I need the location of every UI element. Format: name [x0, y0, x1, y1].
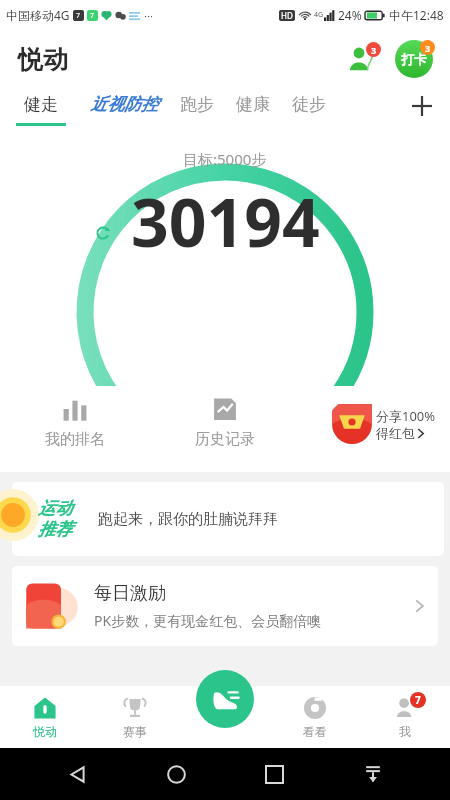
staticText: 7: [76, 11, 81, 21]
button[interactable]: 悦动: [0, 686, 90, 748]
staticText: 跑起来，跟你的肚腩说拜拜: [98, 510, 278, 529]
staticText: 我的排名: [45, 430, 105, 449]
button[interactable]: 看看: [270, 686, 360, 748]
staticText: 3: [425, 42, 431, 54]
button[interactable]: 健走: [16, 88, 66, 126]
staticText: 推荐: [38, 519, 72, 540]
button[interactable]: Add tab: [404, 88, 440, 124]
button[interactable]: 每日激励: [12, 566, 438, 646]
staticText: 得红包: [376, 425, 415, 441]
staticText: 徒步: [292, 94, 326, 115]
button[interactable]: 跑步: [180, 88, 214, 115]
button[interactable]: Start activity: [196, 670, 254, 728]
button[interactable]: Hide navigation bar: [351, 752, 395, 796]
staticText: 跑步: [180, 94, 214, 115]
button[interactable]: 健康: [236, 88, 270, 115]
button[interactable]: 赛事: [90, 686, 180, 748]
staticText: 打卡: [401, 51, 427, 67]
button[interactable]: Home: [154, 752, 198, 796]
staticText: HD: [281, 10, 293, 21]
staticText: 近视防控: [90, 94, 158, 115]
staticText: ···: [144, 8, 153, 23]
button[interactable]: 近视防控: [90, 88, 158, 115]
staticText: 4G: [314, 10, 324, 20]
button[interactable]: Friends: [340, 36, 386, 82]
staticText: 中午12:48: [389, 7, 444, 23]
staticText: 运动: [38, 498, 72, 519]
staticText: 3: [371, 44, 377, 56]
staticText: 赛事: [123, 724, 147, 739]
button[interactable]: Refresh: [92, 222, 114, 244]
button[interactable]: 7: [360, 686, 450, 748]
button[interactable]: 分享100%: [328, 400, 450, 448]
button[interactable]: 历史记录: [150, 386, 300, 449]
staticText: 每日激励: [94, 582, 166, 605]
staticText: 看看: [303, 724, 327, 739]
button[interactable]: [12, 482, 444, 556]
staticText: 悦动: [33, 724, 57, 739]
staticText: 7: [415, 693, 421, 707]
button[interactable]: Recents: [252, 752, 296, 796]
staticText: 目标:5000步: [183, 149, 267, 169]
staticText: 健走: [24, 94, 58, 115]
staticText: 中国移动4G: [6, 7, 70, 23]
staticText: 悦动: [18, 44, 68, 75]
staticText: 24%: [338, 7, 362, 23]
button[interactable]: Back: [55, 752, 99, 796]
button[interactable]: 我的排名: [0, 386, 150, 449]
staticText: 健康: [236, 94, 270, 115]
staticText: 30194: [131, 176, 320, 266]
staticText: 7: [90, 11, 95, 21]
button[interactable]: 徒步: [292, 88, 326, 115]
staticText: 我: [399, 724, 411, 739]
staticText: 历史记录: [195, 430, 255, 449]
button[interactable]: 打卡: [390, 35, 438, 83]
staticText: PK步数，更有现金红包、会员翻倍噢: [94, 611, 322, 630]
staticText: 分享100%: [376, 407, 436, 425]
